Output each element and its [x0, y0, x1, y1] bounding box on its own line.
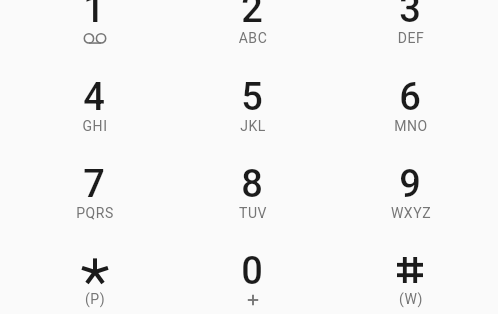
- button[interactable]: 6 MNO: [331, 64, 489, 152]
- button[interactable]: star: [15, 238, 173, 314]
- staticText: 5: [173, 75, 331, 163]
- button[interactable]: 8 TUV: [173, 151, 331, 239]
- button[interactable]: 9 WXYZ: [331, 151, 489, 239]
- staticText: ABC: [174, 30, 332, 118]
- button[interactable]: 7 PQRS: [15, 151, 173, 239]
- staticText: TUV: [174, 205, 332, 293]
- staticText: PQRS: [16, 205, 174, 293]
- button[interactable]: 1 voicemail: [15, 0, 173, 64]
- button[interactable]: 5 JKL: [173, 64, 331, 152]
- staticText: GHI: [16, 118, 174, 206]
- button[interactable]: 4 GHI: [15, 64, 173, 152]
- button[interactable]: 3 DEF: [331, 0, 489, 64]
- staticText: 6: [331, 75, 489, 163]
- button[interactable]: 2 ABC: [173, 0, 331, 64]
- staticText: MNO: [332, 118, 490, 206]
- staticText: 4: [15, 75, 173, 163]
- button[interactable]: 0 plus: [173, 238, 331, 314]
- staticText: 0: [173, 249, 331, 314]
- staticText: DEF: [332, 30, 490, 118]
- staticText: 7: [15, 162, 173, 250]
- button[interactable]: pound: [331, 238, 489, 314]
- staticText: JKL: [174, 118, 332, 206]
- staticText: WXYZ: [332, 205, 490, 293]
- staticText: 8: [173, 162, 331, 250]
- staticText: 9: [331, 162, 489, 250]
- staticText: 1: [15, 0, 173, 75]
- staticText: 2: [173, 0, 331, 75]
- staticText: (P): [16, 291, 174, 314]
- staticText: 3: [331, 0, 489, 75]
- staticText: (W): [332, 291, 490, 314]
